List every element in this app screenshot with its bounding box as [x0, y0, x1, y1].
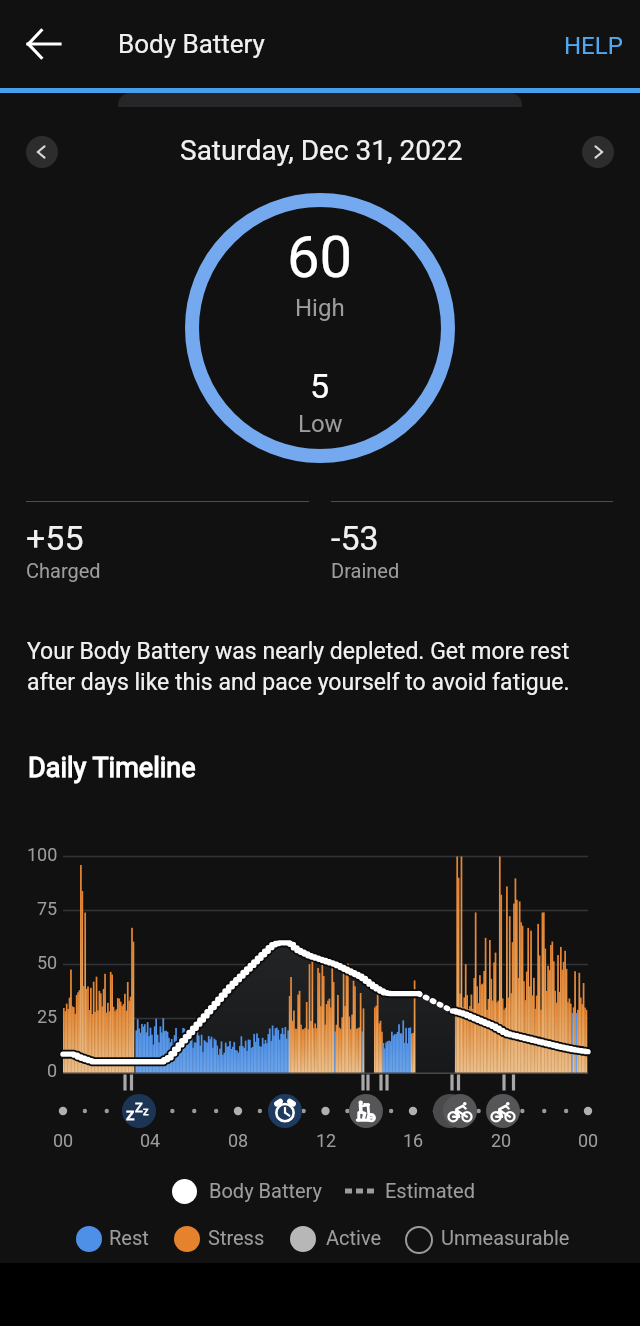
button[interactable]: Cycling [486, 1094, 520, 1128]
staticText: 75 [37, 898, 58, 919]
button[interactable]: Wake alarm [268, 1094, 302, 1128]
staticText: 00 [53, 1130, 74, 1151]
staticText: Unmeasurable [441, 1226, 570, 1249]
staticText: 25 [37, 1006, 58, 1027]
staticText: 5 [310, 366, 330, 406]
staticText: 12 [316, 1130, 337, 1151]
staticText: Saturday, Dec 31, 2022 [180, 134, 463, 167]
staticText: -53 [331, 518, 379, 558]
button[interactable]: Previous day [26, 136, 58, 168]
staticText: Body Battery [209, 1179, 323, 1202]
staticText: Body Battery [118, 29, 265, 59]
button[interactable]: Next day [582, 136, 614, 168]
staticText: Charged [26, 559, 101, 582]
staticText: Daily Timeline [28, 752, 196, 784]
button[interactable]: Sleep [122, 1094, 156, 1128]
staticText: 50 [37, 952, 58, 973]
button[interactable]: Back [14, 14, 74, 74]
staticText: Drained [331, 559, 400, 582]
button[interactable]: HELP [548, 20, 639, 72]
button[interactable]: Indoor cycling [349, 1094, 383, 1128]
staticText: +55 [26, 518, 84, 558]
staticText: Stress [208, 1226, 265, 1249]
staticText: 08 [228, 1130, 249, 1151]
staticText: Estimated [385, 1179, 475, 1202]
staticText: Z [135, 1100, 143, 1115]
staticText: Rest [109, 1226, 149, 1249]
button[interactable]: Cycling [443, 1094, 477, 1128]
staticText: High [295, 294, 345, 322]
staticText: 04 [140, 1130, 161, 1151]
staticText: HELP [564, 32, 623, 60]
staticText: Active [326, 1226, 382, 1249]
staticText: 100 [27, 844, 58, 865]
staticText: 0 [47, 1060, 58, 1081]
staticText: 20 [491, 1130, 512, 1151]
staticText: z [126, 1104, 135, 1124]
staticText: 16 [403, 1130, 424, 1151]
staticText: 00 [578, 1130, 599, 1151]
staticText: Low [298, 410, 343, 438]
staticText: Your Body Battery was nearly depleted. G… [27, 638, 587, 695]
staticText: 60 [287, 223, 353, 291]
staticText: z [143, 1105, 149, 1118]
